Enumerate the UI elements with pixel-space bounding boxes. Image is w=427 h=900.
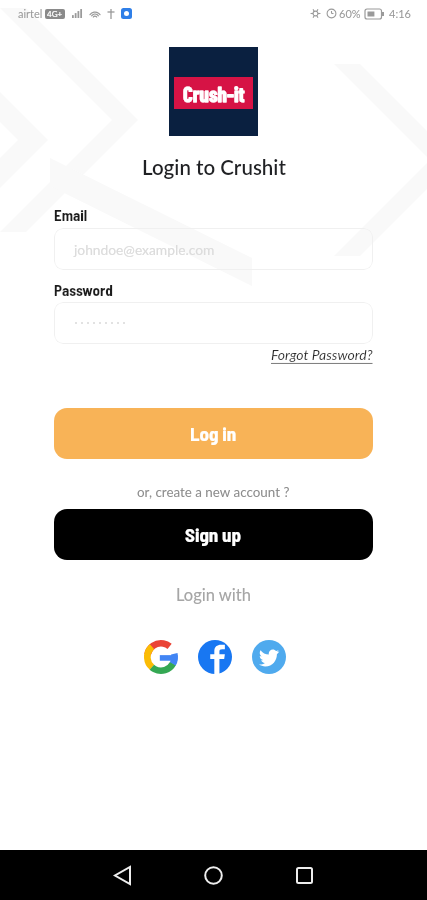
staticText: Sign up — [185, 523, 242, 546]
button[interactable]: Sign up — [54, 509, 373, 560]
staticText: Login to Crushit — [142, 155, 286, 180]
button[interactable]: Sign in with Google — [144, 640, 178, 674]
staticText: Crush-it — [183, 81, 245, 106]
button[interactable] — [54, 302, 373, 344]
button[interactable]: Recent apps — [286, 857, 323, 894]
staticText: or, create a new account ? — [137, 484, 290, 500]
staticText: airtel — [18, 7, 43, 20]
staticText: johndoe@example.com — [74, 241, 215, 258]
staticText: Email — [54, 206, 88, 224]
staticText: Forgot Password? — [271, 346, 373, 363]
button[interactable]: Home — [195, 857, 232, 894]
button[interactable]: Sign in with Facebook — [198, 640, 232, 674]
button[interactable]: Forgot Password? — [271, 346, 373, 363]
button[interactable]: Sign in with Twitter — [252, 640, 286, 674]
staticText: 4:16 — [389, 7, 411, 20]
button[interactable]: johndoe@example.com — [54, 228, 373, 270]
staticText: 60% — [339, 7, 361, 20]
staticText: Login with — [176, 585, 251, 605]
staticText: Log in — [190, 422, 237, 445]
staticText: Password — [54, 281, 113, 299]
button[interactable]: Back — [104, 857, 141, 894]
button[interactable]: Log in — [54, 408, 373, 459]
staticText: 4G+ — [47, 9, 63, 19]
